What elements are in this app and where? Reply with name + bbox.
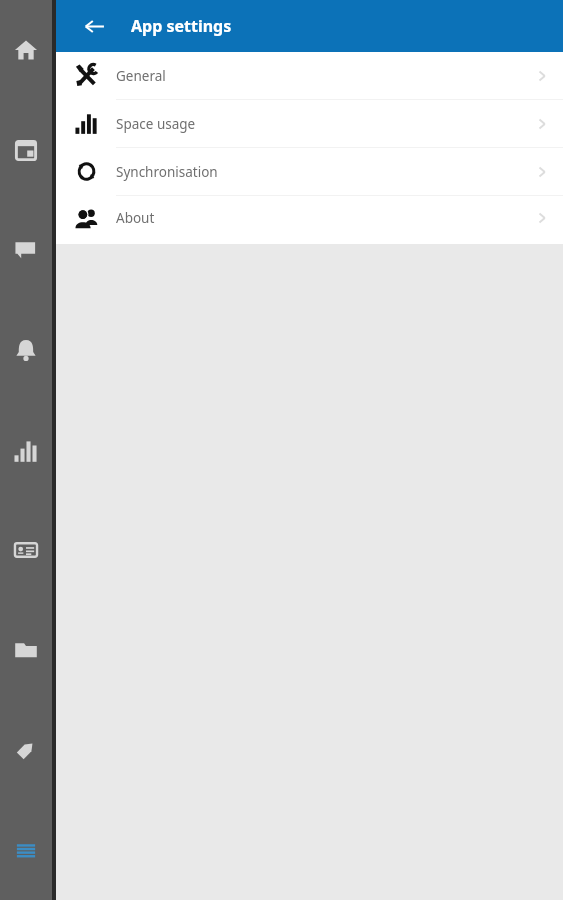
button[interactable]: Contacts bbox=[0, 524, 52, 576]
button[interactable]: Back bbox=[70, 2, 118, 50]
button[interactable]: General bbox=[56, 52, 563, 99]
staticText: Space usage bbox=[116, 115, 196, 133]
staticText: General bbox=[116, 67, 166, 85]
button[interactable]: About bbox=[56, 196, 563, 240]
button[interactable]: Calendar bbox=[0, 124, 52, 176]
button[interactable]: Statistics bbox=[0, 425, 52, 477]
staticText: App settings bbox=[131, 15, 232, 37]
button[interactable]: Files bbox=[0, 624, 52, 676]
button[interactable]: Notifications bbox=[0, 324, 52, 376]
staticText: Synchronisation bbox=[116, 163, 218, 181]
button[interactable]: Synchronisation bbox=[56, 148, 563, 195]
staticText: About bbox=[116, 209, 155, 227]
button[interactable]: Messages bbox=[0, 224, 52, 276]
button[interactable]: More bbox=[0, 824, 52, 876]
button[interactable]: Home bbox=[0, 24, 52, 76]
button[interactable]: Space usage bbox=[56, 100, 563, 147]
button[interactable]: Tags bbox=[0, 724, 52, 776]
